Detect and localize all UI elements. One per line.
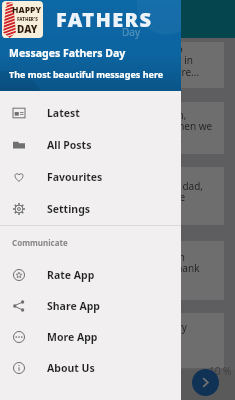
- staticText: Day: [122, 25, 141, 39]
- staticText: The most beautiful messages here: [9, 68, 164, 80]
- staticText: You have always been my very own superhe…: [20, 250, 215, 287]
- staticText: About Us: [47, 361, 95, 375]
- button[interactable]: Settings: [0, 193, 181, 225]
- staticText: More App: [47, 330, 98, 344]
- staticText: FATHERS: [56, 6, 153, 33]
- staticText: Happy fathers day to you, and also you a…: [20, 42, 215, 79]
- staticText: DAY: [17, 22, 38, 36]
- staticText: Dad, you are the best and I am very prou…: [20, 320, 215, 357]
- staticText: A father is the source of all passion, o…: [20, 108, 215, 145]
- button[interactable]: You have always been my very own superhe…: [11, 241, 224, 300]
- staticText: All Posts: [47, 138, 92, 152]
- staticText: Latest: [47, 106, 80, 120]
- button[interactable]: Rate App: [0, 259, 181, 290]
- button[interactable]: Next: [192, 369, 219, 396]
- staticText: Messages Fathers Day: [9, 46, 126, 60]
- staticText: FATHER'S: [17, 16, 38, 22]
- button[interactable]: Favourites: [0, 161, 181, 193]
- button[interactable]: About Us: [0, 352, 181, 383]
- button[interactable]: A father is the source of all passion, o…: [11, 102, 224, 154]
- button[interactable]: Share App: [0, 290, 181, 321]
- button[interactable]: Latest: [0, 97, 181, 129]
- button[interactable]: Happy fathers day to you, and also you a…: [11, 42, 224, 88]
- button[interactable]: Happy Fathers Day to a wonderful dad, fa…: [11, 167, 224, 225]
- staticText: 10 %: [209, 364, 232, 378]
- staticText: HAPPY: [12, 4, 42, 16]
- staticText: Favourites: [47, 170, 103, 184]
- button[interactable]: Dad, you are the best and I am very prou…: [11, 313, 224, 368]
- staticText: Happy Fathers Day to a wonderful dad, fa…: [20, 179, 215, 204]
- button[interactable]: More App: [0, 321, 181, 352]
- staticText: Settings: [47, 202, 91, 216]
- staticText: Communicate: [12, 237, 68, 248]
- staticText: Rate App: [47, 268, 95, 282]
- staticText: Share App: [47, 299, 100, 313]
- button[interactable]: All Posts: [0, 129, 181, 161]
